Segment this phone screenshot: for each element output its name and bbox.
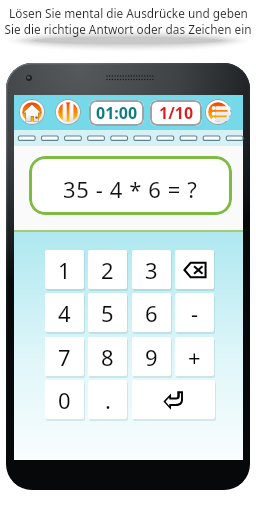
button[interactable]: - [175, 293, 214, 332]
staticText: 01:00 [96, 102, 138, 124]
button[interactable]: 4 [45, 293, 84, 332]
button[interactable]: 5 [88, 293, 127, 332]
button[interactable]: + [175, 337, 214, 376]
staticText: 6 [145, 298, 158, 328]
staticText: 3 [145, 255, 158, 285]
button[interactable]: Enter [132, 380, 215, 419]
button[interactable]: 8 [88, 337, 127, 376]
staticText: 5 [101, 298, 114, 328]
button[interactable]: Home [19, 99, 45, 125]
button[interactable]: 1/10 [150, 100, 202, 126]
staticText: - [191, 298, 199, 328]
button[interactable]: 7 [45, 337, 84, 376]
button[interactable]: 0 [45, 380, 84, 419]
staticText: 9 [145, 342, 158, 372]
button[interactable]: . [88, 380, 127, 419]
staticText: Sie die richtige Antwort oder das Zeiche… [4, 21, 252, 37]
staticText: 8 [101, 342, 114, 372]
button[interactable]: Menu [205, 99, 231, 125]
staticText: . [105, 385, 111, 415]
button[interactable]: 1 [45, 250, 84, 289]
staticText: 1 [58, 255, 71, 285]
button[interactable]: 2 [88, 250, 127, 289]
staticText: Lösen Sie mental die Ausdrücke und geben [9, 5, 248, 21]
button[interactable]: Backspace [175, 250, 214, 289]
button[interactable]: 3 [132, 250, 171, 289]
button[interactable]: 6 [132, 293, 171, 332]
staticText: 4 [58, 298, 71, 328]
button[interactable]: 35 - 4 * 6 = ? [29, 156, 232, 215]
staticText: 1/10 [159, 102, 194, 124]
staticText: 7 [58, 342, 71, 372]
button[interactable]: 01:00 [89, 100, 144, 126]
staticText: 0 [58, 385, 71, 415]
staticText: 2 [101, 255, 114, 285]
button[interactable]: Pause [55, 99, 81, 125]
staticText: 35 - 4 * 6 = ? [63, 174, 198, 204]
button[interactable]: 9 [132, 337, 171, 376]
staticText: + [188, 342, 201, 372]
